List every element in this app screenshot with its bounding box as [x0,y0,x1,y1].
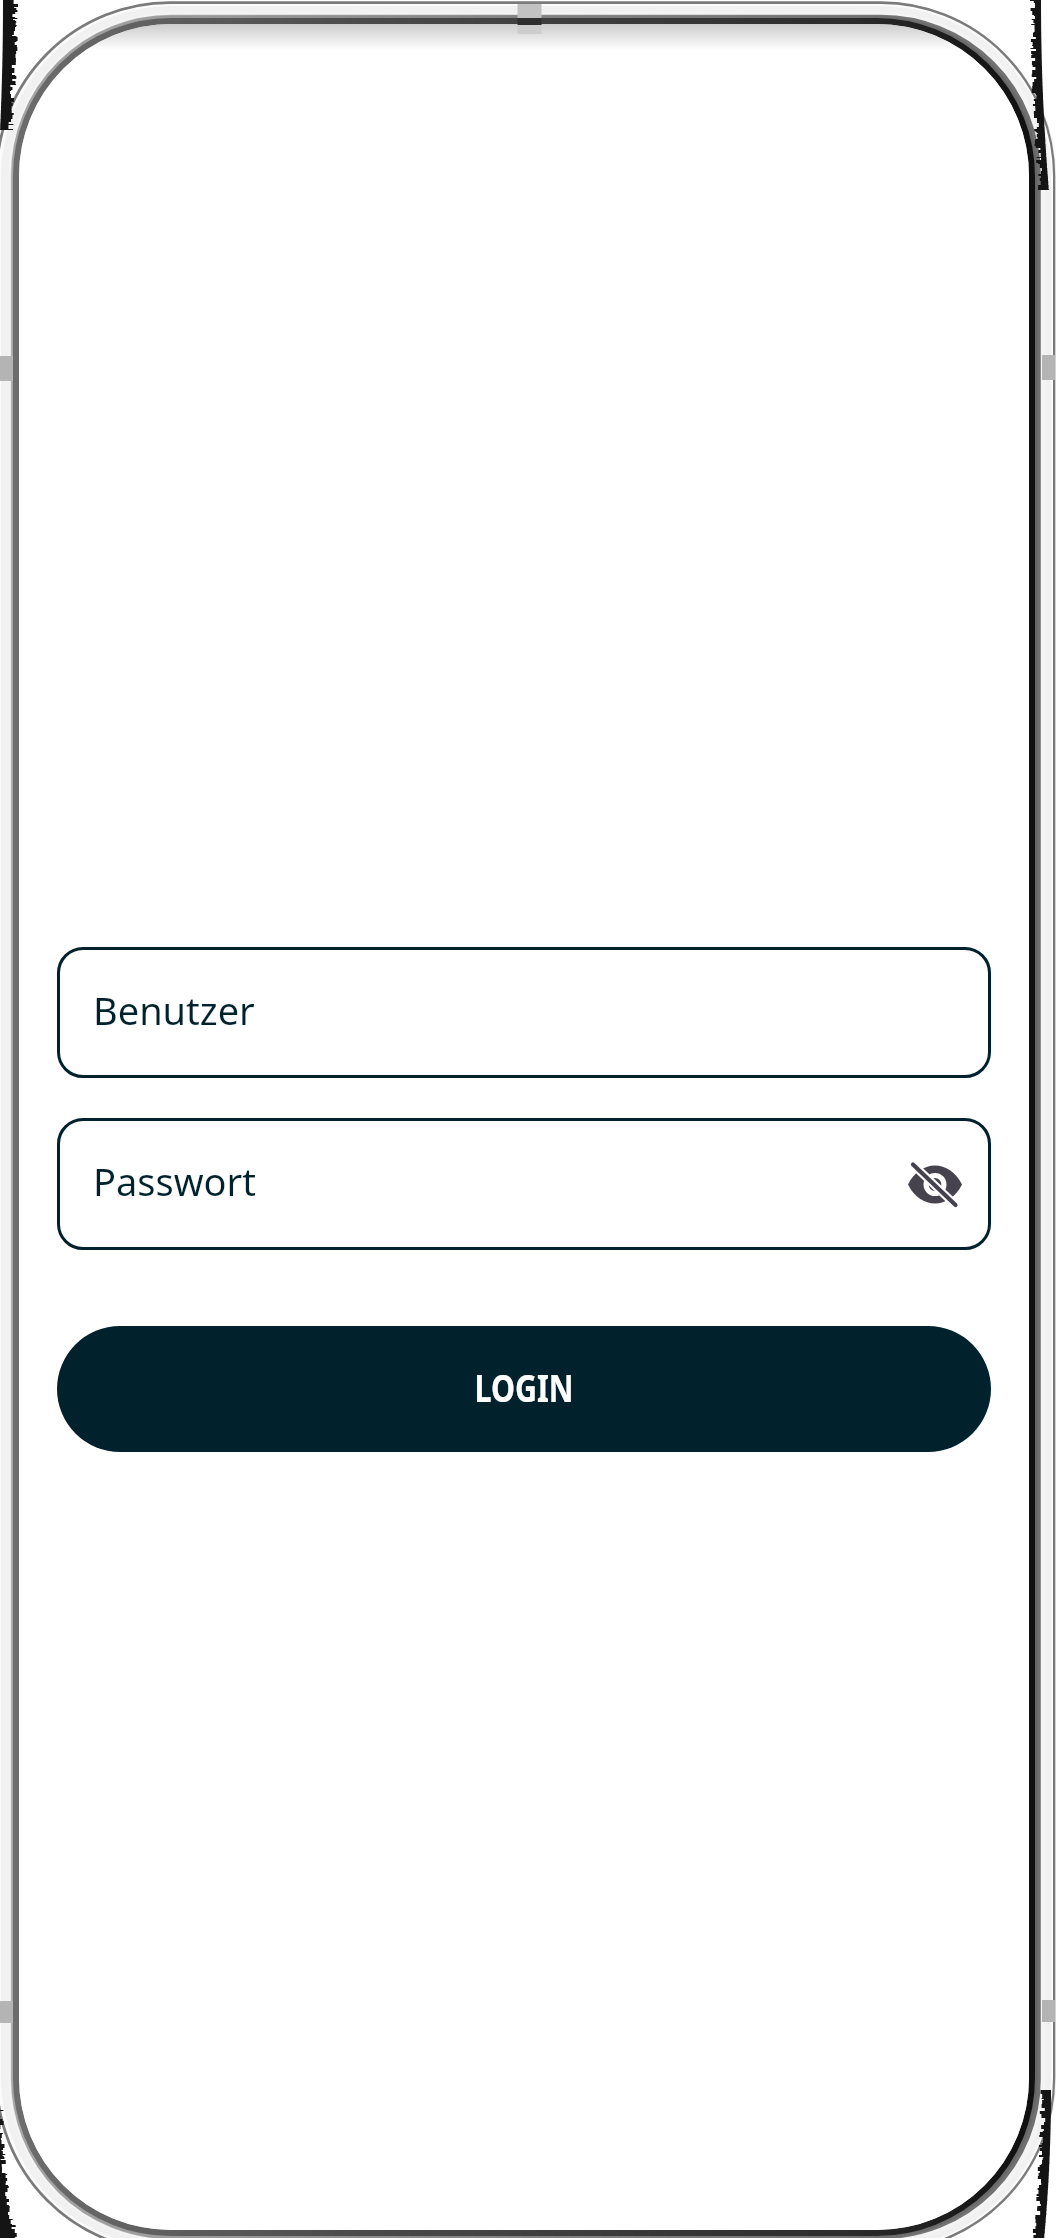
button[interactable]: LOGIN [57,1326,991,1452]
staticText: LOGIN [474,1361,574,1413]
staticText: Passwort [93,1155,256,1207]
staticText: Benutzer [93,984,255,1036]
button[interactable]: Show password [904,1153,966,1215]
button[interactable]: Benutzer [57,947,991,1078]
button[interactable]: Passwort [57,1118,991,1250]
